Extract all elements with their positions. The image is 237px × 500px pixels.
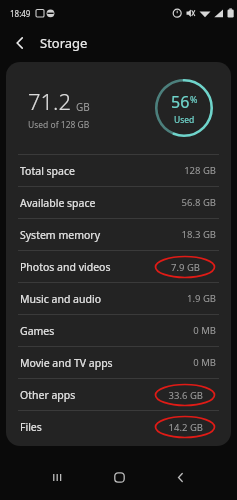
button[interactable]: Total space xyxy=(6,155,231,186)
staticText: 1.9 GB xyxy=(187,292,216,305)
staticText: Files xyxy=(20,420,42,434)
button[interactable]: Music and audio xyxy=(6,283,231,314)
staticText: 33.6 GB xyxy=(168,389,203,402)
button[interactable]: Available space xyxy=(6,187,231,218)
staticText: Total space xyxy=(20,164,75,178)
staticText: Music and audio xyxy=(20,292,101,306)
staticText: 71.2 xyxy=(28,86,72,116)
button[interactable]: Files xyxy=(6,411,231,442)
button[interactable]: Photos and videos xyxy=(6,251,231,282)
staticText: Games xyxy=(20,324,55,338)
staticText: GB xyxy=(76,100,90,114)
staticText: Used of 128 GB xyxy=(28,119,90,131)
staticText: 0 MB xyxy=(193,324,216,337)
staticText: 7.9 GB xyxy=(171,261,200,274)
button[interactable]: Back xyxy=(4,27,36,59)
staticText: Photos and videos xyxy=(20,260,111,274)
staticText: 56.8 GB xyxy=(181,196,216,209)
staticText: Other apps xyxy=(20,388,76,402)
staticText: Movie and TV apps xyxy=(20,356,113,370)
button[interactable]: System memory xyxy=(6,219,231,250)
staticText: 0 MB xyxy=(193,356,216,369)
staticText: Available space xyxy=(20,196,96,210)
button[interactable]: Back xyxy=(163,460,197,494)
button[interactable]: Home xyxy=(102,460,136,494)
staticText: 128 GB xyxy=(184,164,216,177)
staticText: System memory xyxy=(20,228,101,242)
staticText: 18:49 xyxy=(10,8,31,19)
staticText: Storage xyxy=(40,34,88,52)
staticText: 56 xyxy=(171,91,190,113)
staticText: % xyxy=(190,93,198,105)
staticText: 14.2 GB xyxy=(168,421,203,434)
button[interactable]: Games xyxy=(6,315,231,346)
staticText: 18.3 GB xyxy=(181,228,216,241)
button[interactable]: Other apps xyxy=(6,379,231,410)
button[interactable]: Recents xyxy=(40,460,74,494)
staticText: Used xyxy=(174,114,195,126)
button[interactable]: Movie and TV apps xyxy=(6,347,231,378)
